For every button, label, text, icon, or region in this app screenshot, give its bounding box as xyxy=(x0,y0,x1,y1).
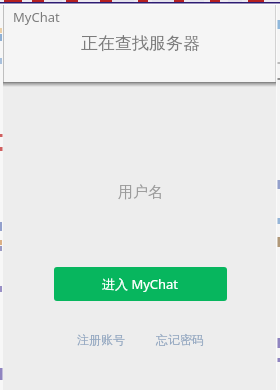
staticText: 忘记密码 xyxy=(156,332,204,347)
staticText: 进入 MyChat xyxy=(102,275,179,293)
button[interactable]: 注册账号 xyxy=(77,332,125,347)
staticText: 注册账号 xyxy=(77,332,125,347)
button[interactable]: 忘记密码 xyxy=(156,332,204,347)
staticText: 用户名 xyxy=(118,183,163,202)
button[interactable]: 进入 MyChat xyxy=(54,267,227,301)
staticText: MyChat xyxy=(13,8,60,26)
staticText: 正在查找服务器 xyxy=(81,33,200,54)
